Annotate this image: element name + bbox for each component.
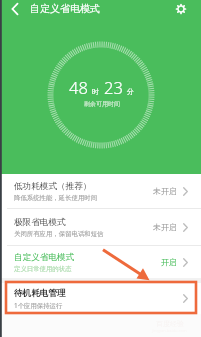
button[interactable]: Settings	[166, 0, 195, 17]
staticText: 定义日常使用的状态	[14, 265, 72, 273]
staticText: 开启	[161, 257, 177, 267]
staticText: 时	[92, 87, 99, 96]
staticText: 降低系统性能，延长使用时间	[14, 194, 98, 202]
staticText: 未开启	[153, 222, 177, 232]
staticText: 分	[127, 87, 134, 96]
staticText: 低功耗模式（推荐）	[14, 181, 92, 192]
button[interactable]: 待机耗电管理	[0, 283, 201, 314]
button[interactable]: 自定义省电模式	[0, 246, 201, 278]
staticText: 待机耗电管理	[14, 288, 66, 299]
button[interactable]: 极限省电模式	[0, 209, 201, 245]
staticText: 未开启	[153, 186, 177, 196]
button[interactable]: 低功耗模式（推荐）	[0, 174, 201, 208]
button[interactable]: Back	[0, 0, 30, 17]
staticText: 自定义省电模式	[30, 2, 100, 15]
staticText: 关闭所有应用，保留电话和短信	[14, 230, 104, 238]
staticText: 1个应用保持运行	[14, 301, 63, 310]
staticText: 自定义省电模式	[14, 252, 75, 263]
staticText: 48	[69, 76, 88, 98]
staticText: 23	[104, 76, 123, 98]
staticText: 剩余可用时间	[84, 100, 120, 108]
staticText: 极限省电模式	[14, 217, 66, 228]
